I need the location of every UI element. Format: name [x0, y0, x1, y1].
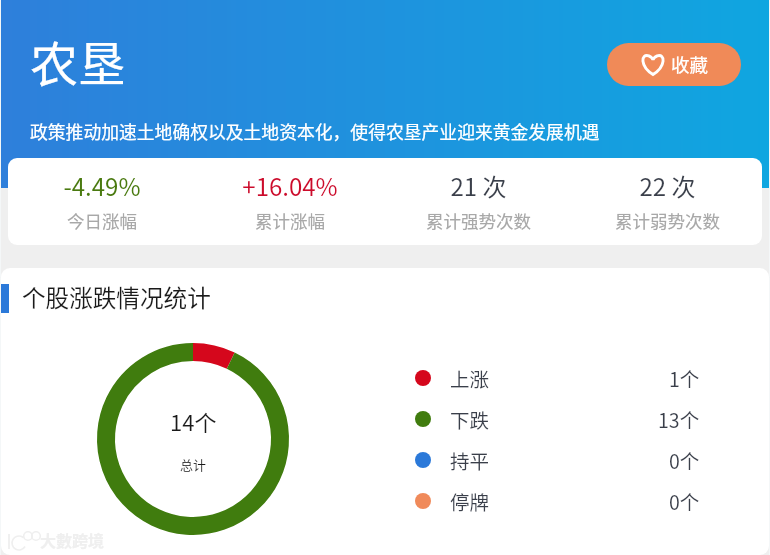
- button[interactable]: 收藏 Add to favourites: [607, 43, 741, 86]
- button[interactable]: +16.04%: [196, 158, 384, 245]
- staticText: 停牌: [450, 487, 490, 515]
- staticText: 总计: [180, 455, 207, 474]
- staticText: 收藏: [671, 51, 709, 78]
- staticText: 累计弱势次数: [615, 208, 720, 233]
- staticText: 累计涨幅: [255, 208, 325, 233]
- staticText: 持平: [450, 446, 490, 474]
- button[interactable]: 下跌: [415, 398, 700, 439]
- staticText: 农垦: [30, 26, 127, 96]
- button[interactable]: 持平: [415, 439, 700, 480]
- button[interactable]: 上涨: [415, 357, 700, 398]
- staticText: -4.49%: [63, 168, 141, 203]
- staticText: 上涨: [450, 364, 490, 392]
- staticText: 下跌: [450, 405, 490, 433]
- staticText: 政策推动加速土地确权以及土地资本化，使得农垦产业迎来黄金发展机遇: [30, 118, 600, 144]
- staticText: +16.04%: [242, 168, 338, 203]
- staticText: 个股涨跌情况统计: [22, 280, 211, 314]
- staticText: 22 次: [639, 168, 696, 203]
- staticText: 1个: [669, 364, 700, 392]
- staticText: 21 次: [450, 168, 507, 203]
- staticText: 大數跨境: [40, 528, 105, 551]
- button[interactable]: 停牌: [415, 480, 700, 521]
- staticText: 13个: [658, 405, 700, 433]
- button[interactable]: 21 次: [384, 158, 573, 245]
- staticText: 0个: [669, 487, 700, 515]
- button[interactable]: -4.49%: [8, 158, 196, 245]
- staticText: 0个: [669, 446, 700, 474]
- button[interactable]: 22 次: [573, 158, 762, 245]
- staticText: 14个: [170, 405, 217, 437]
- staticText: 今日涨幅: [67, 208, 137, 233]
- staticText: 累计强势次数: [426, 208, 531, 233]
